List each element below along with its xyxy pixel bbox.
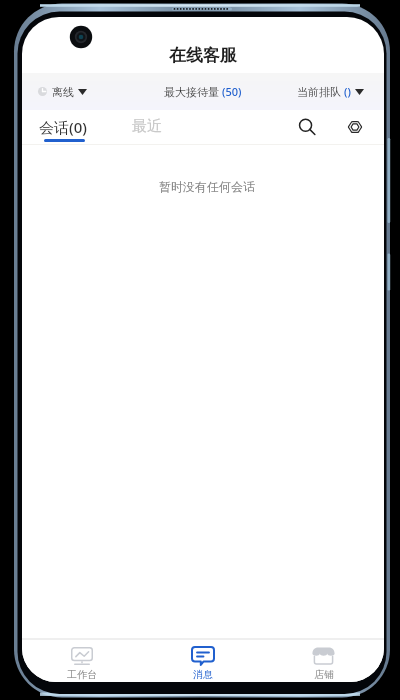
- staticText: (50): [222, 84, 242, 99]
- staticText: 暂时没有任何会话: [159, 179, 255, 194]
- staticText: 离线: [52, 85, 74, 99]
- button[interactable]: Settings: [337, 110, 373, 143]
- staticText: 店铺: [314, 668, 334, 681]
- button[interactable]: 店铺: [263, 640, 384, 682]
- button[interactable]: 离线: [38, 73, 87, 110]
- staticText: 在线客服: [169, 45, 237, 66]
- button[interactable]: 最近: [125, 110, 169, 143]
- staticText: 会话(0): [39, 117, 87, 137]
- staticText: (): [344, 84, 351, 99]
- staticText: 消息: [193, 668, 213, 681]
- button[interactable]: 当前排队: [297, 73, 364, 110]
- button[interactable]: Search: [289, 110, 325, 143]
- button[interactable]: 会话(0): [36, 110, 89, 143]
- staticText: 当前排队: [297, 84, 344, 99]
- button[interactable]: 工作台: [22, 640, 142, 682]
- button[interactable]: 消息: [142, 640, 263, 682]
- staticText: 最大接待量: [164, 84, 222, 99]
- staticText: 工作台: [67, 668, 97, 681]
- staticText: 最近: [132, 117, 162, 136]
